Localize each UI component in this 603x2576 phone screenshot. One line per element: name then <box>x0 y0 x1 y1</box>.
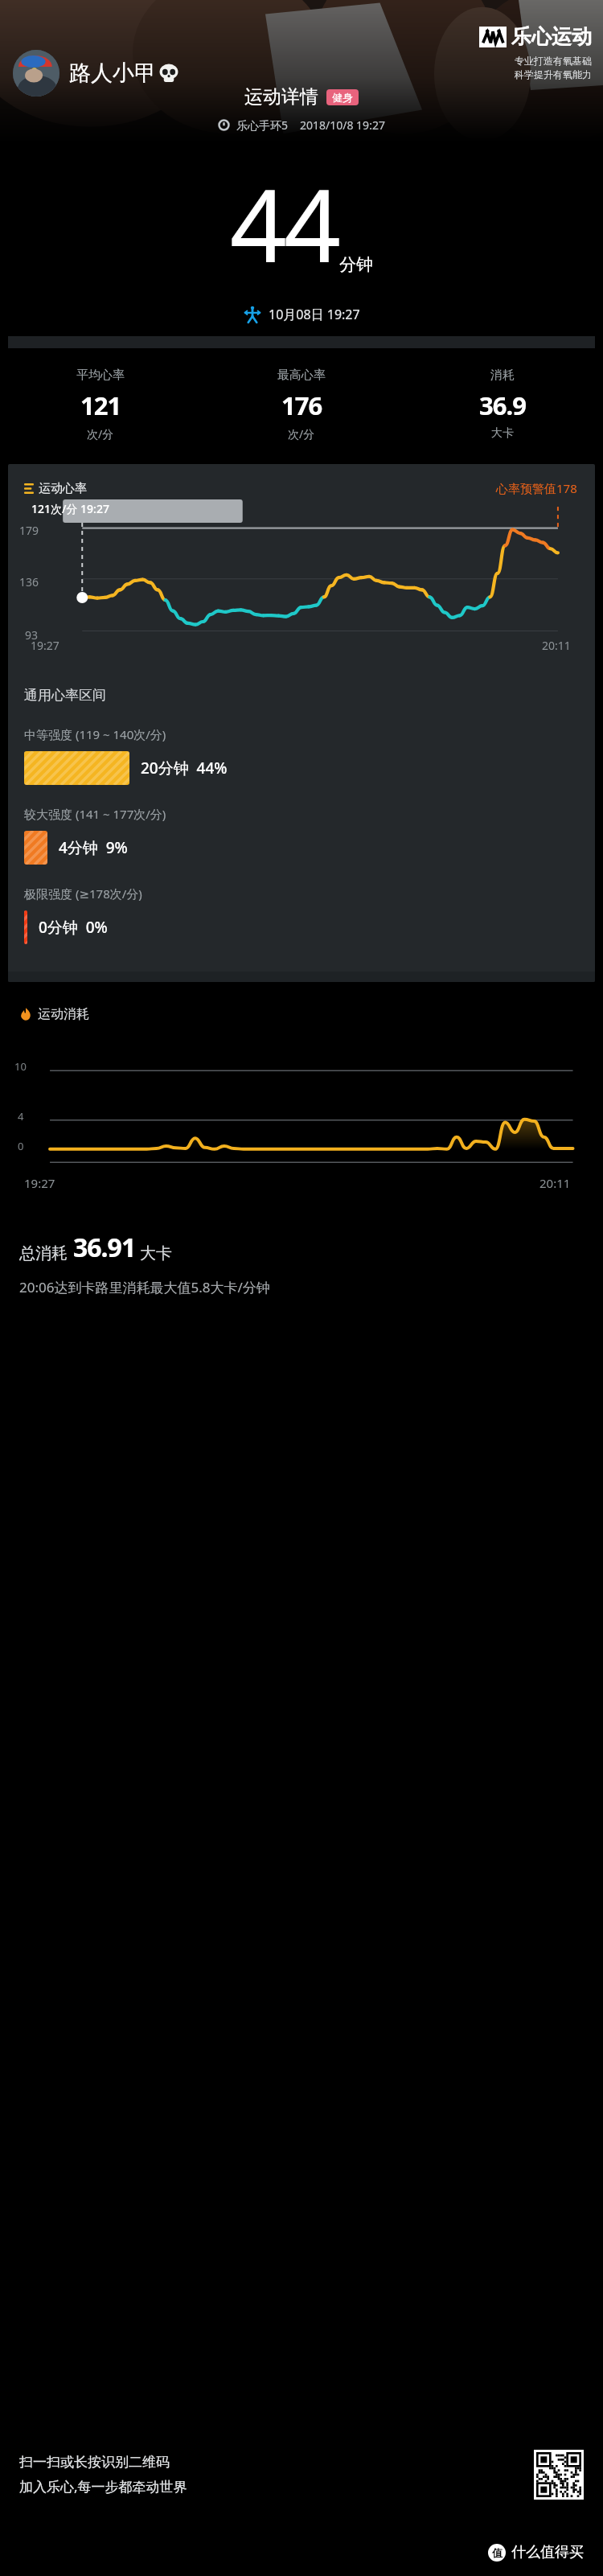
staticText: 0分钟 0% <box>39 917 108 938</box>
staticText: 加入乐心,每一步都牵动世界 <box>19 2477 187 2496</box>
staticText: 121次/分 19:27 <box>31 501 109 516</box>
button[interactable]: 运动消耗 <box>19 1006 89 1022</box>
button[interactable]: 极限强度 (≥178次/分) <box>8 885 595 944</box>
staticText: 扫一扫或长按识别二维码 <box>19 2454 170 2471</box>
staticText: 消耗 <box>490 368 515 383</box>
button[interactable]: 消耗 <box>402 366 603 442</box>
staticText: 4 <box>18 1109 24 1124</box>
staticText: 36.9 <box>479 388 526 422</box>
staticText: 20:11 <box>539 1175 571 1191</box>
staticText: 20:11 <box>542 638 571 653</box>
staticText: 乐心手环5 <box>236 117 289 133</box>
staticText: 心率预警值178 <box>496 480 577 496</box>
button[interactable]: 运动心率 <box>24 480 595 496</box>
staticText: 2018/10/8 19:27 <box>300 117 385 133</box>
staticText: 大卡 <box>140 1243 172 1263</box>
staticText: 176 <box>281 388 322 422</box>
staticText: 10 <box>14 1059 27 1074</box>
staticText: 极限强度 (≥178次/分) <box>24 885 142 902</box>
staticText: 乐心运动 <box>511 24 592 49</box>
staticText: 179 <box>19 523 39 538</box>
staticText: 大卡 <box>491 426 514 441</box>
staticText: 较大强度 (141 ~ 177次/分) <box>24 806 166 822</box>
staticText: 总消耗 <box>19 1243 68 1263</box>
staticText: 36.91 <box>73 1230 136 1265</box>
staticText: 平均心率 <box>76 368 125 383</box>
staticText: 次/分 <box>87 426 114 442</box>
staticText: 19:27 <box>31 638 59 653</box>
button[interactable]: 健身 <box>332 91 353 104</box>
button[interactable]: 中等强度 (119 ~ 140次/分) <box>8 726 595 785</box>
staticText: 次/分 <box>288 426 315 442</box>
staticText: 136 <box>19 574 39 590</box>
staticText: 值 <box>492 2546 503 2559</box>
staticText: 路人小甲 <box>69 60 156 87</box>
staticText: 10月08日 19:27 <box>269 306 360 323</box>
staticText: 专业打造有氧基础 <box>515 55 592 67</box>
staticText: 44 <box>230 155 338 291</box>
button[interactable]: 平均心率 <box>0 366 201 443</box>
staticText: 最高心率 <box>277 368 326 383</box>
staticText: 科学提升有氧能力 <box>515 68 592 80</box>
staticText: 运动详情 <box>244 85 318 109</box>
button[interactable]: 最高心率 <box>201 366 402 443</box>
staticText: 93 <box>25 627 39 643</box>
button[interactable]: QR code <box>534 2450 584 2500</box>
button[interactable]: User avatar <box>13 50 59 97</box>
button[interactable]: 较大强度 (141 ~ 177次/分) <box>8 806 595 865</box>
staticText: 通用心率区间 <box>24 687 106 704</box>
staticText: 0 <box>18 1139 24 1153</box>
staticText: 健身 <box>332 91 353 104</box>
staticText: 121 <box>80 388 121 422</box>
staticText: 20:06达到卡路里消耗最大值5.8大卡/分钟 <box>19 1278 270 1296</box>
staticText: 中等强度 (119 ~ 140次/分) <box>24 726 166 742</box>
staticText: 分钟 <box>339 254 373 275</box>
staticText: 4分钟 9% <box>59 837 128 858</box>
staticText: 运动消耗 <box>38 1006 89 1022</box>
staticText: 20分钟 44% <box>141 758 228 779</box>
staticText: 19:27 <box>24 1175 55 1191</box>
staticText: 什么值得买 <box>511 2543 584 2562</box>
staticText: 运动心率 <box>39 481 87 496</box>
